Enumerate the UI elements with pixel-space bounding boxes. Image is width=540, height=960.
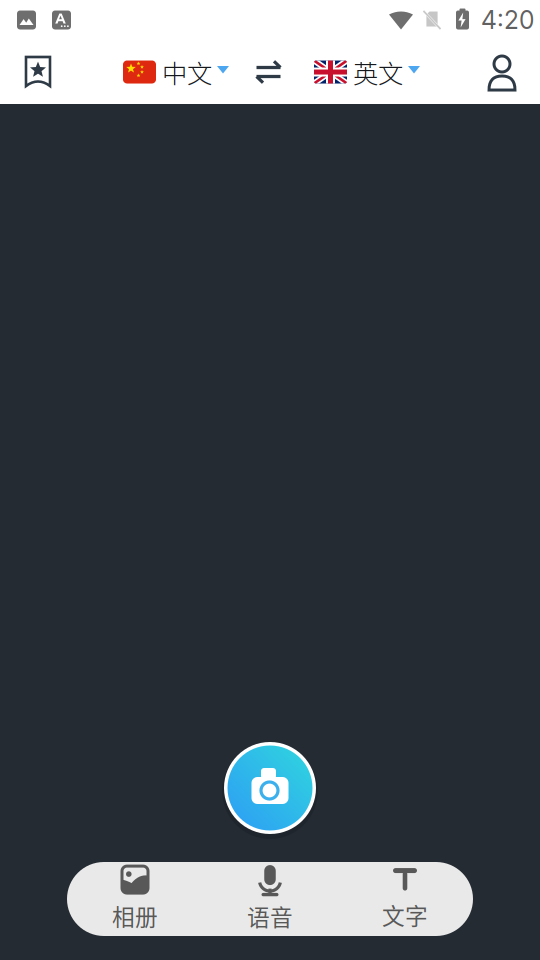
staticText: 中文 <box>162 54 212 90</box>
button[interactable]: 相册 <box>67 862 202 936</box>
button[interactable]: Account <box>473 43 531 101</box>
button[interactable]: Camera translate <box>218 736 322 840</box>
staticText: 语音 <box>247 900 293 932</box>
staticText: 4:20 <box>481 5 534 35</box>
staticText: 相册 <box>112 899 158 932</box>
button[interactable]: 中文 <box>123 43 228 101</box>
button[interactable]: Swap languages <box>245 43 293 101</box>
button[interactable]: 文字 <box>337 862 472 936</box>
button[interactable]: 语音 <box>202 862 337 936</box>
button[interactable]: Favorites <box>9 43 67 101</box>
staticText: 英文 <box>353 54 403 90</box>
staticText: 文字 <box>382 898 428 931</box>
button[interactable]: 英文 <box>314 43 419 101</box>
